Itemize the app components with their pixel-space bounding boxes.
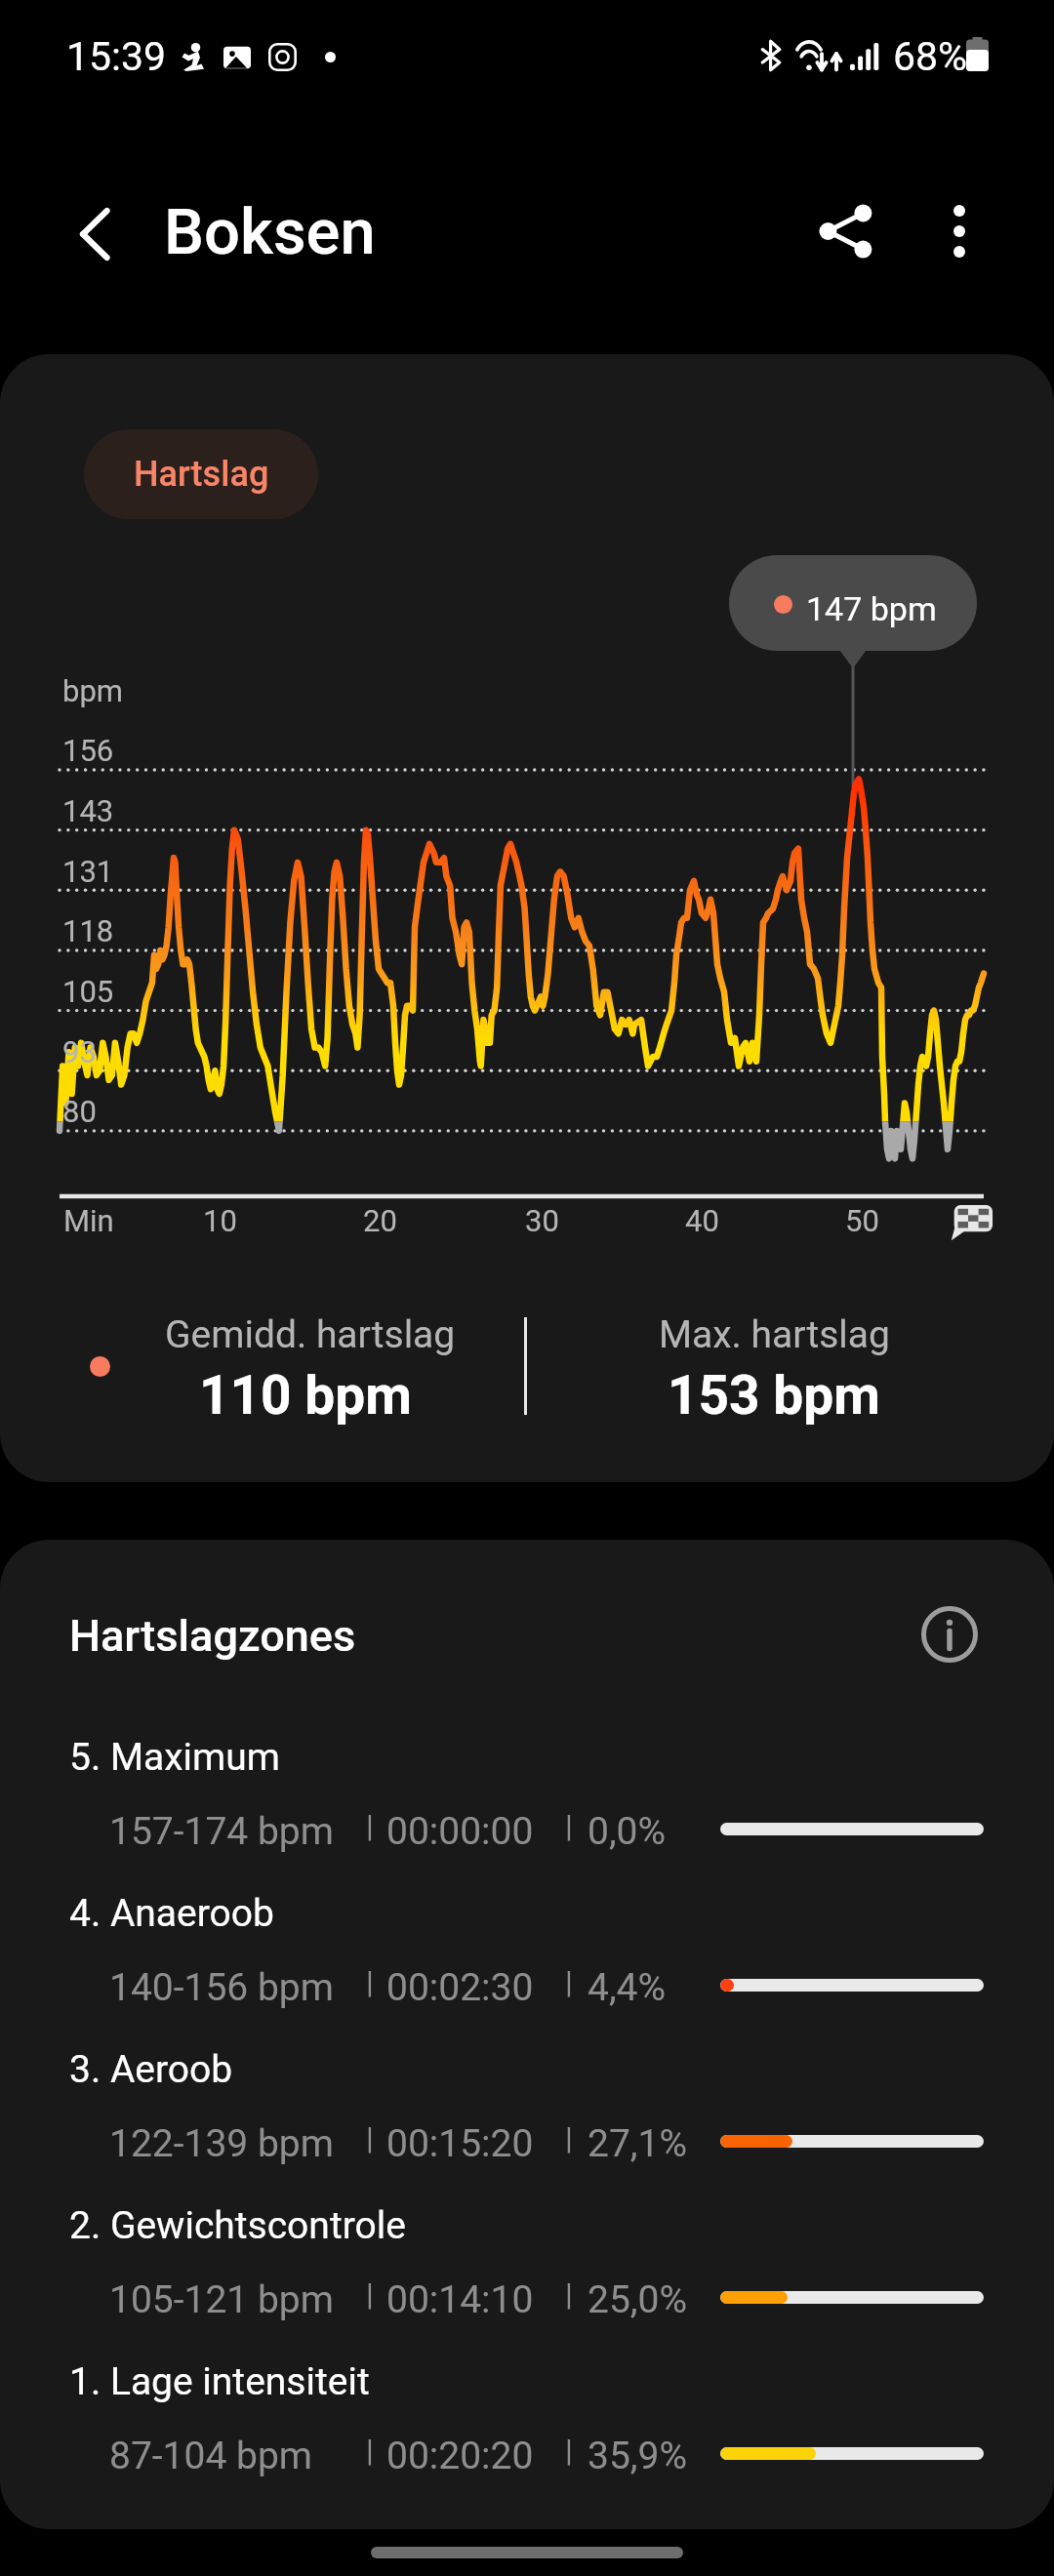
button[interactable]: Info <box>896 1581 1003 1688</box>
staticText: 15:39 <box>66 33 167 80</box>
staticText: 105-121 bpm <box>109 2277 334 2322</box>
staticText: 27,1% <box>588 2121 687 2166</box>
button[interactable]: 2. Gewichtscontrole <box>0 2182 1054 2338</box>
staticText: 2. Gewichtscontrole <box>69 2203 406 2248</box>
staticText: 153 bpm <box>668 1364 880 1427</box>
button[interactable]: Back <box>46 185 143 283</box>
button[interactable]: 5. Maximum <box>0 1713 1054 1870</box>
button[interactable]: 4. Anaeroob <box>0 1870 1054 2026</box>
staticText: | <box>565 1807 573 1844</box>
staticText: | <box>366 2119 374 2156</box>
staticText: 105 <box>62 974 114 1009</box>
staticText: 5. Maximum <box>69 1735 280 1780</box>
staticText: 4,4% <box>588 1965 667 2010</box>
button[interactable]: Hartslag <box>84 429 318 519</box>
staticText: 157-174 bpm <box>109 1809 334 1854</box>
staticText: 00:20:20 <box>386 2434 534 2478</box>
staticText: Max. hartslag <box>659 1312 890 1357</box>
staticText: 122-139 bpm <box>109 2121 334 2166</box>
staticText: 40 <box>685 1203 719 1238</box>
staticText: 3. Aeroob <box>69 2047 233 2092</box>
staticText: | <box>565 2119 573 2156</box>
staticText: 68% <box>893 33 968 80</box>
staticText: Hartslagzones <box>69 1610 356 1662</box>
staticText: 1. Lage intensiteit <box>69 2359 370 2404</box>
staticText: 140-156 bpm <box>109 1965 334 2010</box>
staticText: 10 <box>203 1203 237 1238</box>
staticText: 0,0% <box>588 1809 667 1854</box>
staticText: 50 <box>845 1203 879 1238</box>
staticText: 35,9% <box>588 2434 687 2478</box>
staticText: 30 <box>525 1203 559 1238</box>
staticText: 93 <box>62 1034 97 1069</box>
staticText: Min <box>63 1203 114 1238</box>
staticText: Boksen <box>164 195 376 269</box>
staticText: Hartslag <box>134 454 269 495</box>
button[interactable]: 1. Lage intensiteit <box>0 2338 1054 2494</box>
staticText: 118 <box>62 913 114 948</box>
staticText: | <box>366 1807 374 1844</box>
staticText: 25,0% <box>588 2277 687 2322</box>
staticText: 156 <box>62 733 114 768</box>
staticText: | <box>366 2275 374 2313</box>
staticText: 00:00:00 <box>386 1809 534 1854</box>
staticText: 4. Anaeroob <box>69 1891 274 1936</box>
staticText: | <box>366 1963 374 2000</box>
button[interactable]: More options <box>911 182 1008 280</box>
button[interactable]: 147 bpm <box>729 555 977 651</box>
staticText: 00:02:30 <box>386 1965 534 2010</box>
staticText: | <box>366 2432 374 2469</box>
staticText: | <box>565 2275 573 2313</box>
staticText: 147 bpm <box>806 589 937 628</box>
staticText: 00:14:10 <box>386 2277 534 2322</box>
staticText: 110 bpm <box>199 1364 412 1427</box>
staticText: 20 <box>363 1203 397 1238</box>
staticText: Gemidd. hartslag <box>165 1312 456 1357</box>
button[interactable]: 3. Aeroob <box>0 2026 1054 2182</box>
staticText: | <box>565 2432 573 2469</box>
staticText: 131 <box>62 854 114 889</box>
staticText: 143 <box>62 793 114 828</box>
staticText: 87-104 bpm <box>109 2434 313 2478</box>
staticText: 00:15:20 <box>386 2121 534 2166</box>
staticText: | <box>565 1963 573 2000</box>
staticText: bpm <box>62 673 123 708</box>
button[interactable]: Share <box>797 182 895 280</box>
staticText: 80 <box>62 1094 97 1129</box>
